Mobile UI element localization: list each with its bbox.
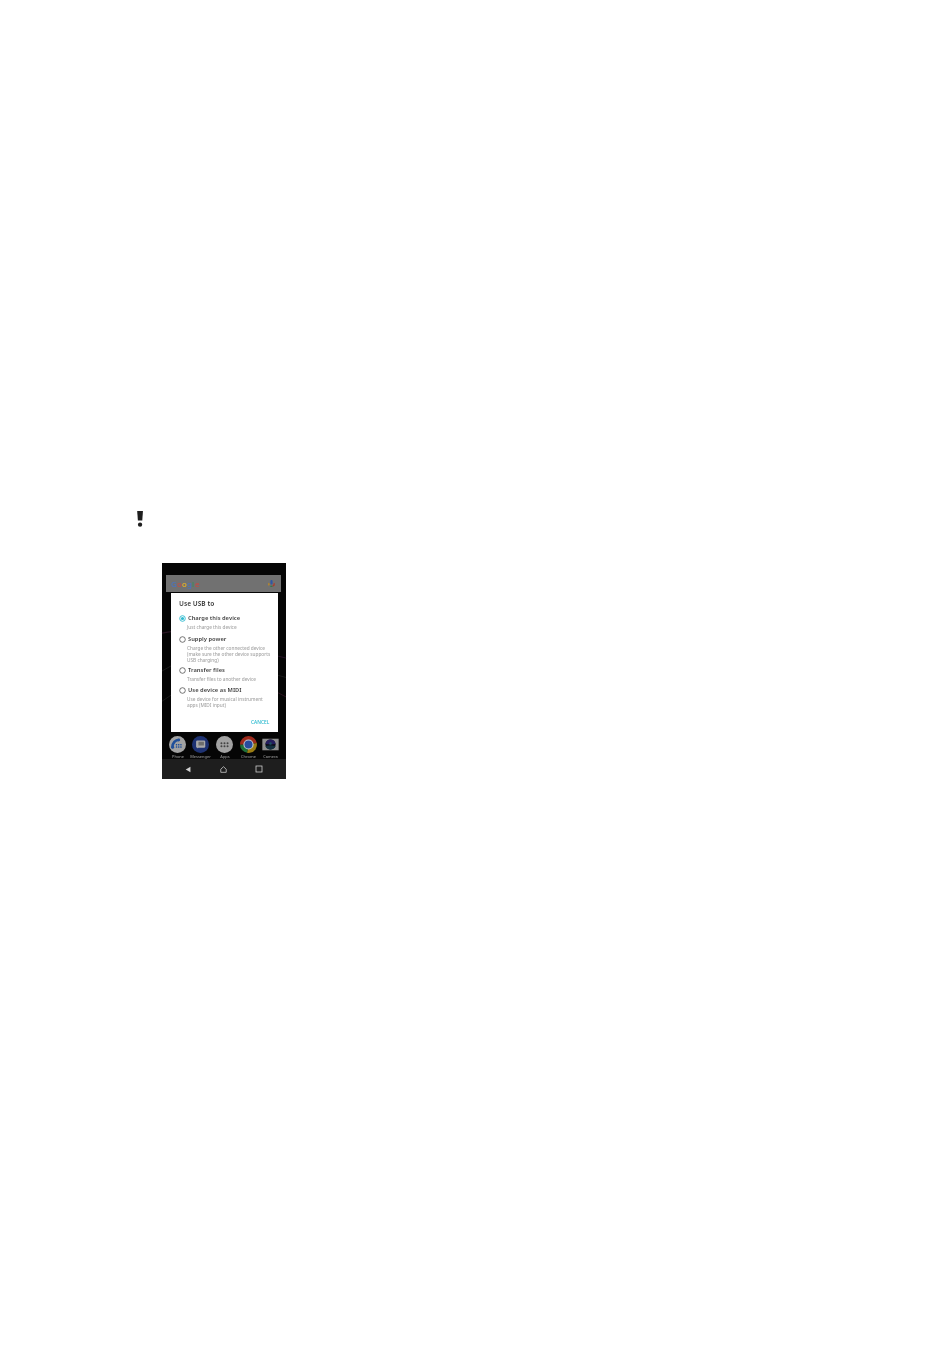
staticText: Use device for musical instrument [187, 696, 263, 702]
staticText: Supply power [188, 635, 227, 643]
staticText: USB charging) [187, 657, 219, 663]
button[interactable]: Back [179, 759, 198, 779]
button[interactable]: Voice search [267, 579, 276, 588]
button[interactable]: CANCEL [248, 717, 273, 728]
staticText: Apps [220, 754, 230, 759]
button[interactable]: Apps [213, 734, 236, 758]
staticText: Use device as MIDI [188, 686, 242, 694]
staticText: apps (MIDI input) [187, 702, 226, 708]
button[interactable]: Supply power [176, 633, 273, 645]
staticText: Use USB to [179, 599, 215, 608]
staticText: e [195, 579, 200, 590]
staticText: Messenger [190, 754, 211, 759]
button[interactable]: Chrome [237, 734, 260, 758]
button[interactable]: Home [214, 759, 233, 779]
staticText: o [177, 579, 182, 590]
staticText: Transfer files [188, 666, 225, 674]
staticText: Phone [172, 754, 184, 759]
staticText: (make sure the other device supports [187, 651, 271, 657]
button[interactable]: Messenger [189, 734, 212, 758]
button[interactable]: Recents [249, 759, 268, 779]
staticText: Transfer files to another device [187, 676, 256, 682]
staticText: o [182, 579, 187, 590]
button[interactable]: Camera [259, 734, 282, 758]
staticText: l [192, 579, 195, 590]
button[interactable]: Phone [166, 734, 189, 758]
staticText: Camera [263, 754, 278, 759]
staticText: CANCEL [251, 719, 270, 726]
button[interactable]: Charge this device [176, 612, 273, 624]
staticText: Just charge this device [187, 624, 237, 630]
staticText: G [171, 579, 177, 590]
staticText: Charge the other connected device [187, 645, 265, 651]
staticText: g [187, 579, 192, 590]
button[interactable]: Transfer files [176, 664, 273, 676]
button[interactable]: Use device as MIDI [176, 684, 273, 696]
staticText: Charge this device [188, 614, 241, 622]
button[interactable]: G [166, 575, 281, 592]
staticText: Chrome [241, 754, 256, 759]
